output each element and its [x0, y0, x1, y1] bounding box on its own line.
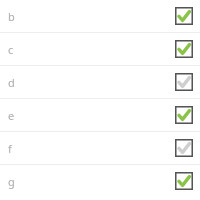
button[interactable]: Unchecked, toggle on — [175, 139, 193, 157]
staticText: c — [8, 42, 14, 57]
button[interactable]: Unchecked, toggle on — [175, 73, 193, 91]
button[interactable]: Checked, toggle off — [175, 40, 193, 58]
button[interactable]: c — [0, 33, 200, 65]
staticText: d — [8, 75, 15, 90]
button[interactable]: f — [0, 132, 200, 164]
button[interactable]: e — [0, 99, 200, 131]
button[interactable]: Checked, toggle off — [175, 172, 193, 190]
button[interactable]: g — [0, 165, 200, 197]
button[interactable]: Checked, toggle off — [175, 7, 193, 25]
staticText: g — [8, 174, 15, 189]
button[interactable]: d — [0, 66, 200, 98]
button[interactable]: b — [0, 0, 200, 32]
button[interactable]: Checked, toggle off — [175, 106, 193, 124]
staticText: e — [8, 108, 15, 123]
staticText: b — [8, 9, 15, 24]
staticText: f — [8, 141, 12, 156]
